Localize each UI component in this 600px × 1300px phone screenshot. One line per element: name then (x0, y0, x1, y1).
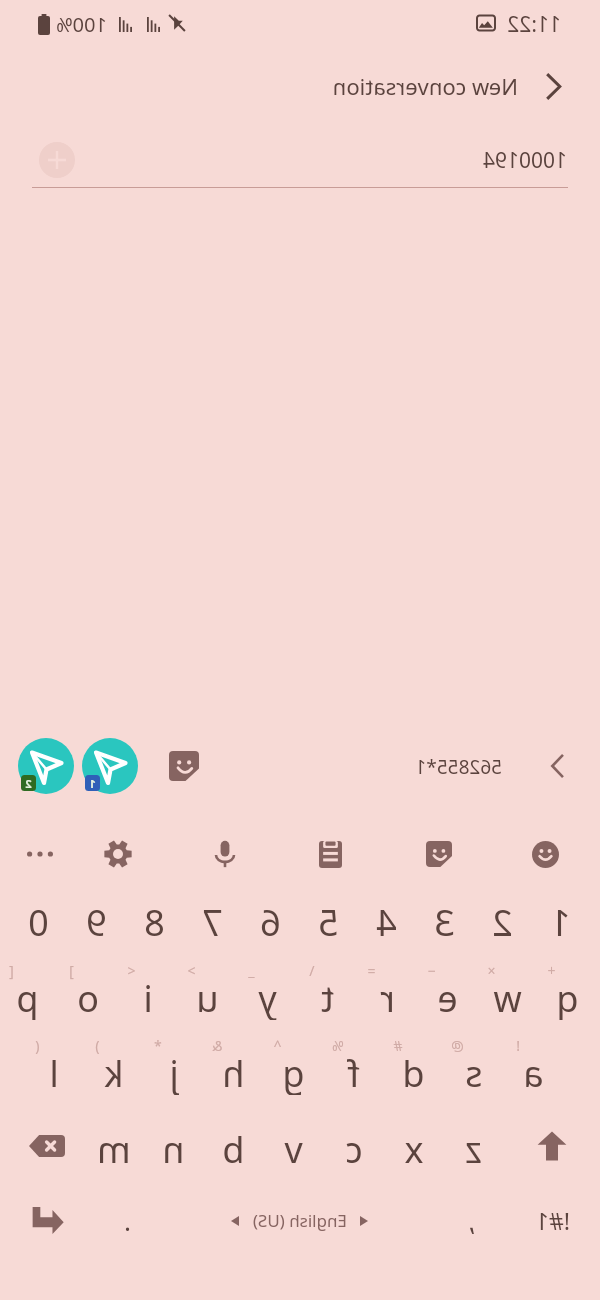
staticText: × (487, 961, 496, 980)
staticText: 2 (25, 776, 32, 791)
button[interactable]: l (24, 1049, 84, 1095)
button[interactable]: 4 (359, 898, 415, 944)
staticText: 5 (318, 898, 339, 944)
staticText: v (284, 1125, 303, 1171)
button[interactable]: q (538, 974, 598, 1020)
staticText: 11:22 (507, 10, 561, 38)
button[interactable]: Clipboard (307, 830, 355, 878)
staticText: u (196, 974, 219, 1020)
button[interactable]: z (444, 1125, 504, 1171)
staticText: @ (451, 1036, 464, 1055)
button[interactable]: 1 (533, 898, 589, 944)
staticText: d (402, 1049, 425, 1095)
staticText: 6 (260, 898, 281, 944)
button[interactable]: k (84, 1049, 144, 1095)
staticText: + (547, 961, 556, 980)
button[interactable]: Back (530, 62, 578, 110)
button[interactable]: s (444, 1049, 504, 1095)
button[interactable]: Shift (524, 1120, 580, 1172)
staticText: a (523, 1049, 544, 1095)
staticText: k (104, 1049, 124, 1095)
staticText: 7 (202, 898, 223, 944)
button[interactable]: Voice input (201, 830, 249, 878)
button[interactable]: v (264, 1125, 324, 1171)
button[interactable]: r (358, 974, 418, 1020)
staticText: 0 (28, 898, 49, 944)
button[interactable]: , (452, 1197, 492, 1243)
staticText: 100% (56, 11, 107, 38)
button[interactable]: a (504, 1049, 564, 1095)
button[interactable]: t (298, 974, 358, 1020)
button[interactable]: 7 (185, 898, 241, 944)
staticText: t (321, 974, 334, 1020)
button[interactable]: Space (180, 1194, 420, 1246)
button[interactable]: !#1 (523, 1194, 583, 1246)
staticText: n (162, 1125, 185, 1171)
button[interactable]: j (144, 1049, 204, 1095)
button[interactable]: m (84, 1125, 144, 1171)
button[interactable]: 3 (417, 898, 473, 944)
staticText: _ (248, 961, 255, 980)
button[interactable]: . (108, 1197, 148, 1243)
staticText: \ (309, 961, 315, 980)
staticText: j (169, 1049, 179, 1095)
staticText: English (US) (252, 1209, 347, 1232)
staticText: , (468, 1203, 475, 1238)
button[interactable]: h (204, 1049, 264, 1095)
staticText: % (332, 1036, 344, 1055)
button[interactable]: Add recipient (39, 142, 75, 178)
button[interactable]: Expand (538, 746, 578, 786)
staticText: e (437, 974, 458, 1020)
button[interactable]: p (0, 974, 58, 1020)
staticText: ( (35, 1036, 40, 1055)
button[interactable]: b (204, 1125, 264, 1171)
staticText: h (222, 1049, 245, 1095)
button[interactable]: w (478, 974, 538, 1020)
button[interactable]: Send with SIM 2 (16, 736, 76, 796)
button[interactable]: 0 (11, 898, 67, 944)
staticText: > (187, 961, 196, 980)
button[interactable]: o (58, 974, 118, 1020)
button[interactable]: n (144, 1125, 204, 1171)
staticText: s (465, 1049, 483, 1095)
button[interactable]: Backspace (17, 1120, 77, 1172)
button[interactable]: d (384, 1049, 444, 1095)
button[interactable]: y (238, 974, 298, 1020)
button[interactable]: f (324, 1049, 384, 1095)
staticText: m (97, 1125, 131, 1171)
button[interactable]: Settings (94, 830, 142, 878)
button[interactable]: More options (16, 830, 64, 878)
button[interactable]: Stickers (164, 746, 204, 786)
button[interactable]: New conversation (332, 71, 518, 101)
button[interactable]: 5 (301, 898, 357, 944)
staticText: q (556, 974, 579, 1020)
staticText: o (77, 974, 99, 1020)
button[interactable]: 6 (243, 898, 299, 944)
button[interactable]: x (384, 1125, 444, 1171)
staticText: & (212, 1036, 223, 1055)
button[interactable]: 8 (127, 898, 183, 944)
staticText: 562855*1 (415, 754, 502, 780)
staticText: . (124, 1203, 131, 1238)
staticText: New conversation (332, 71, 518, 101)
button[interactable]: c (324, 1125, 384, 1171)
staticText: 1 (550, 898, 571, 944)
staticText: f (347, 1049, 360, 1095)
staticText: i (143, 974, 153, 1020)
button[interactable]: g (264, 1049, 324, 1095)
staticText: w (493, 974, 522, 1020)
button[interactable]: Enter (18, 1194, 78, 1246)
staticText: x (404, 1125, 424, 1171)
staticText: z (465, 1125, 482, 1171)
button[interactable]: Stickers (415, 830, 463, 878)
button[interactable]: i (118, 974, 178, 1020)
button[interactable]: Send with SIM 1 (80, 736, 140, 796)
button[interactable]: 2 (475, 898, 531, 944)
button[interactable]: 9 (69, 898, 125, 944)
staticText: !#1 (535, 1205, 570, 1236)
button[interactable]: u (178, 974, 238, 1020)
staticText: y (258, 974, 277, 1020)
staticText: * (154, 1036, 162, 1055)
button[interactable]: e (418, 974, 478, 1020)
button[interactable]: Emoji (522, 830, 570, 878)
